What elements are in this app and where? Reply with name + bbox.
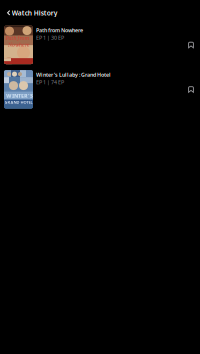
staticText: Watch History: [12, 8, 58, 17]
staticText: GRAND HOTEL: [4, 99, 32, 105]
staticText: Winter's Lullaby : Grand Hotel: [36, 71, 111, 78]
staticText: Path from: [5, 35, 29, 42]
staticText: Nowhere: [8, 42, 30, 49]
button[interactable]: Watch History: [0, 0, 200, 26]
staticText: EP 1 | 30 EP: [36, 34, 64, 41]
staticText: EP 1 | 74 EP: [36, 79, 64, 86]
staticText: Path from Nowhere: [36, 27, 83, 34]
button[interactable]: Winter's Lullaby : Grand Hotel: [0, 70, 200, 115]
button[interactable]: Path from Nowhere: [0, 26, 200, 70]
staticText: WINTER'S: [6, 92, 33, 99]
